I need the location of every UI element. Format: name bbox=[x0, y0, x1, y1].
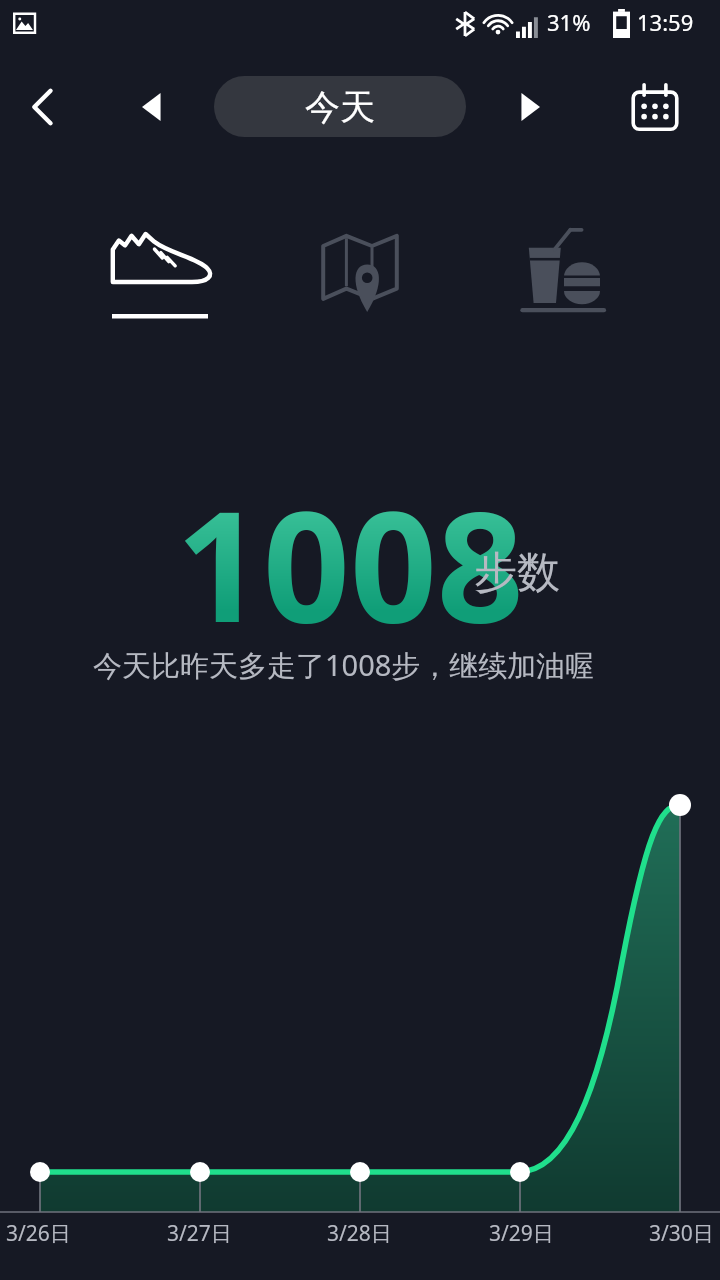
button[interactable]: Calendar bbox=[622, 76, 688, 138]
button[interactable]: Back bbox=[14, 78, 72, 136]
staticText: 3/29日 bbox=[489, 1219, 554, 1248]
button[interactable]: Route map bbox=[280, 210, 440, 330]
staticText: 1008 bbox=[176, 460, 524, 667]
staticText: 3/30日 bbox=[649, 1219, 714, 1248]
staticText: 3/26日 bbox=[6, 1219, 71, 1248]
staticText: 13:59 bbox=[637, 7, 694, 37]
staticText: 3/27日 bbox=[167, 1219, 232, 1248]
staticText: 步数 bbox=[474, 546, 560, 600]
button[interactable]: Next day bbox=[500, 78, 558, 136]
staticText: 3/28日 bbox=[327, 1219, 392, 1248]
staticText: 今天 bbox=[305, 85, 375, 129]
button[interactable]: Food bbox=[480, 210, 640, 330]
staticText: 今天比昨天多走了1008步，继续加油喔 bbox=[93, 645, 595, 685]
staticText: 31% bbox=[547, 7, 591, 37]
button[interactable]: 今天 bbox=[214, 76, 466, 137]
button[interactable]: Previous day bbox=[124, 78, 182, 136]
button[interactable]: Steps bbox=[80, 210, 240, 330]
